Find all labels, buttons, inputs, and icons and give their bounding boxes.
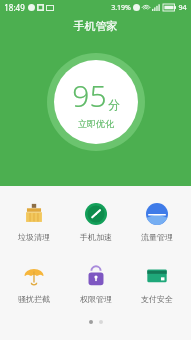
- staticText: 立即优化: [78, 118, 114, 129]
- button[interactable]: 手机加速: [68, 200, 124, 244]
- button[interactable]: 95: [47, 53, 145, 151]
- staticText: 95: [72, 75, 107, 116]
- staticText: 手机加速: [80, 232, 112, 242]
- staticText: 骚扰拦截: [18, 294, 50, 304]
- button[interactable]: 支付安全: [129, 262, 185, 306]
- staticText: 支付安全: [141, 294, 173, 304]
- staticText: 18:49: [4, 2, 25, 13]
- staticText: 3.19%: [111, 3, 131, 13]
- button[interactable]: 流量管理: [129, 200, 185, 244]
- staticText: 流量管理: [141, 232, 173, 242]
- staticText: 垃圾清理: [18, 232, 50, 242]
- staticText: 手机管家: [0, 19, 191, 33]
- staticText: 权限管理: [80, 294, 112, 304]
- button[interactable]: 权限管理: [68, 262, 124, 306]
- button[interactable]: 垃圾清理: [6, 200, 62, 244]
- staticText: 94: [178, 3, 187, 13]
- button[interactable]: 骚扰拦截: [6, 262, 62, 306]
- staticText: 分: [108, 97, 120, 112]
